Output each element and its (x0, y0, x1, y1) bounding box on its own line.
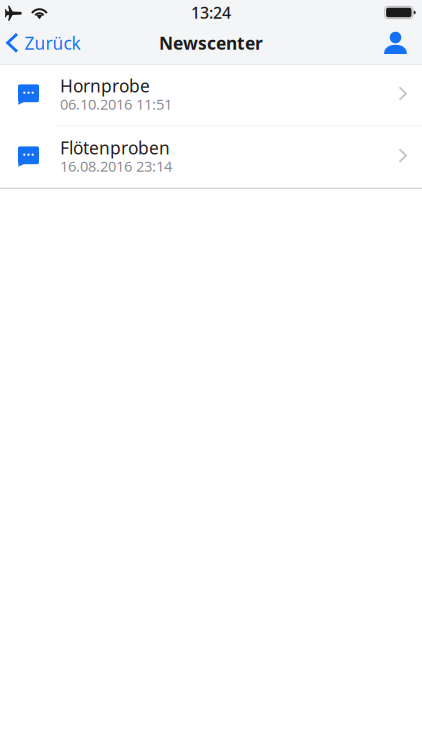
button[interactable]: Account (372, 22, 422, 64)
staticText: 16.08.2016 23:14 (60, 156, 172, 176)
staticText: Hornprobe (60, 74, 150, 97)
staticText: Newscenter (159, 31, 263, 54)
button[interactable]: Zurück (0, 22, 91, 64)
button[interactable]: Hornprobe (0, 65, 422, 126)
button[interactable]: Flötenproben (0, 127, 422, 188)
staticText: 13:24 (191, 2, 231, 23)
staticText: Flötenproben (60, 136, 170, 159)
staticText: Zurück (25, 31, 81, 54)
staticText: 06.10.2016 11:51 (60, 94, 172, 114)
